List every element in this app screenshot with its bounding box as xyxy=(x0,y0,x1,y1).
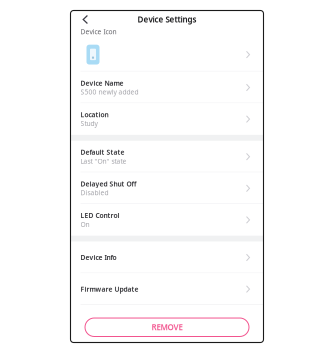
button[interactable] xyxy=(70,37,263,72)
staticText: LED Control xyxy=(80,211,119,220)
staticText: Default State xyxy=(80,148,124,157)
button[interactable]: Firmware Update xyxy=(70,273,263,305)
staticText: Device Name xyxy=(80,79,123,87)
staticText: REMOVE xyxy=(151,322,182,332)
button[interactable]: Device Name xyxy=(70,72,263,103)
staticText: Device Info xyxy=(80,253,116,262)
staticText: On xyxy=(80,220,89,229)
staticText: Last "On" state xyxy=(80,157,126,166)
staticText: Location xyxy=(80,110,108,119)
button[interactable]: REMOVE xyxy=(85,318,249,336)
staticText: Device Icon xyxy=(80,27,116,36)
staticText: Disabled xyxy=(80,188,108,197)
button[interactable]: Location xyxy=(70,103,263,135)
button[interactable]: Default State xyxy=(70,141,263,172)
staticText: Firmware Update xyxy=(80,285,138,294)
button[interactable]: Delayed Shut Off xyxy=(70,172,263,204)
staticText: S500 newly added xyxy=(80,87,138,96)
button[interactable]: Back xyxy=(70,10,94,28)
staticText: Study xyxy=(80,119,97,128)
staticText: Device Settings xyxy=(137,14,196,25)
button[interactable]: Device Info xyxy=(70,242,263,273)
staticText: Delayed Shut Off xyxy=(80,179,136,188)
button[interactable]: LED Control xyxy=(70,204,263,236)
